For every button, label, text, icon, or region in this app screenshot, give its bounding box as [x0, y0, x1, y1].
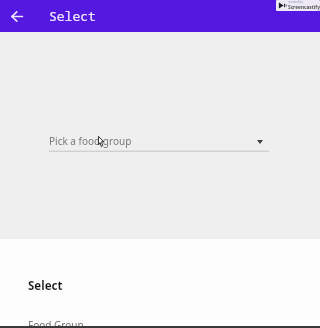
staticText: Select [49, 7, 96, 25]
staticText: created by [288, 0, 303, 4]
button[interactable]: Back [0, 0, 34, 32]
staticText: Pick a food group [49, 134, 132, 148]
button[interactable]: Food Group [0, 316, 320, 328]
staticText: Screencastify [288, 4, 320, 11]
staticText: Select [28, 278, 63, 294]
staticText: Food Group [28, 318, 84, 328]
button[interactable]: Pick a food group [0, 131, 320, 155]
